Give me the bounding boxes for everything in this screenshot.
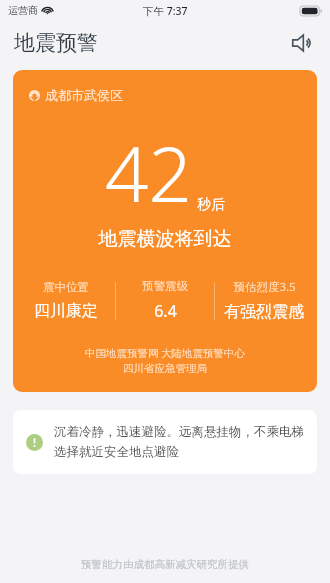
staticText: 6.4	[154, 300, 177, 322]
staticText: 秒后	[197, 196, 225, 214]
staticText: 预估烈度3.5	[233, 279, 296, 295]
staticText: 四川康定	[34, 301, 98, 321]
button[interactable]: 成都市武侯区	[13, 70, 317, 392]
staticText: 预警震级	[142, 279, 188, 293]
staticText: 运营商	[8, 4, 38, 17]
staticText: 沉着冷静，迅速避险。远离悬挂物，不乘电梯	[54, 424, 304, 440]
staticText: 预警能力由成都高新减灾研究所提供	[81, 558, 249, 571]
button[interactable]: Sound	[284, 25, 320, 61]
staticText: 下午 7:37	[143, 4, 188, 18]
staticText: 地震预警	[14, 30, 98, 56]
button[interactable]: 沉着冷静，迅速避险。远离悬挂物，不乘电梯	[13, 410, 317, 474]
staticText: 有强烈震感	[224, 302, 304, 322]
staticText: 中国地震预警网 大陆地震预警中心	[13, 346, 317, 360]
staticText: 42	[105, 121, 192, 225]
staticText: 选择就近安全地点避险	[54, 444, 179, 460]
staticText: 震中位置	[43, 280, 89, 294]
staticText: 四川省应急管理局	[13, 362, 317, 375]
staticText: 成都市武侯区	[45, 87, 123, 103]
staticText: 地震横波将到达	[13, 227, 317, 251]
